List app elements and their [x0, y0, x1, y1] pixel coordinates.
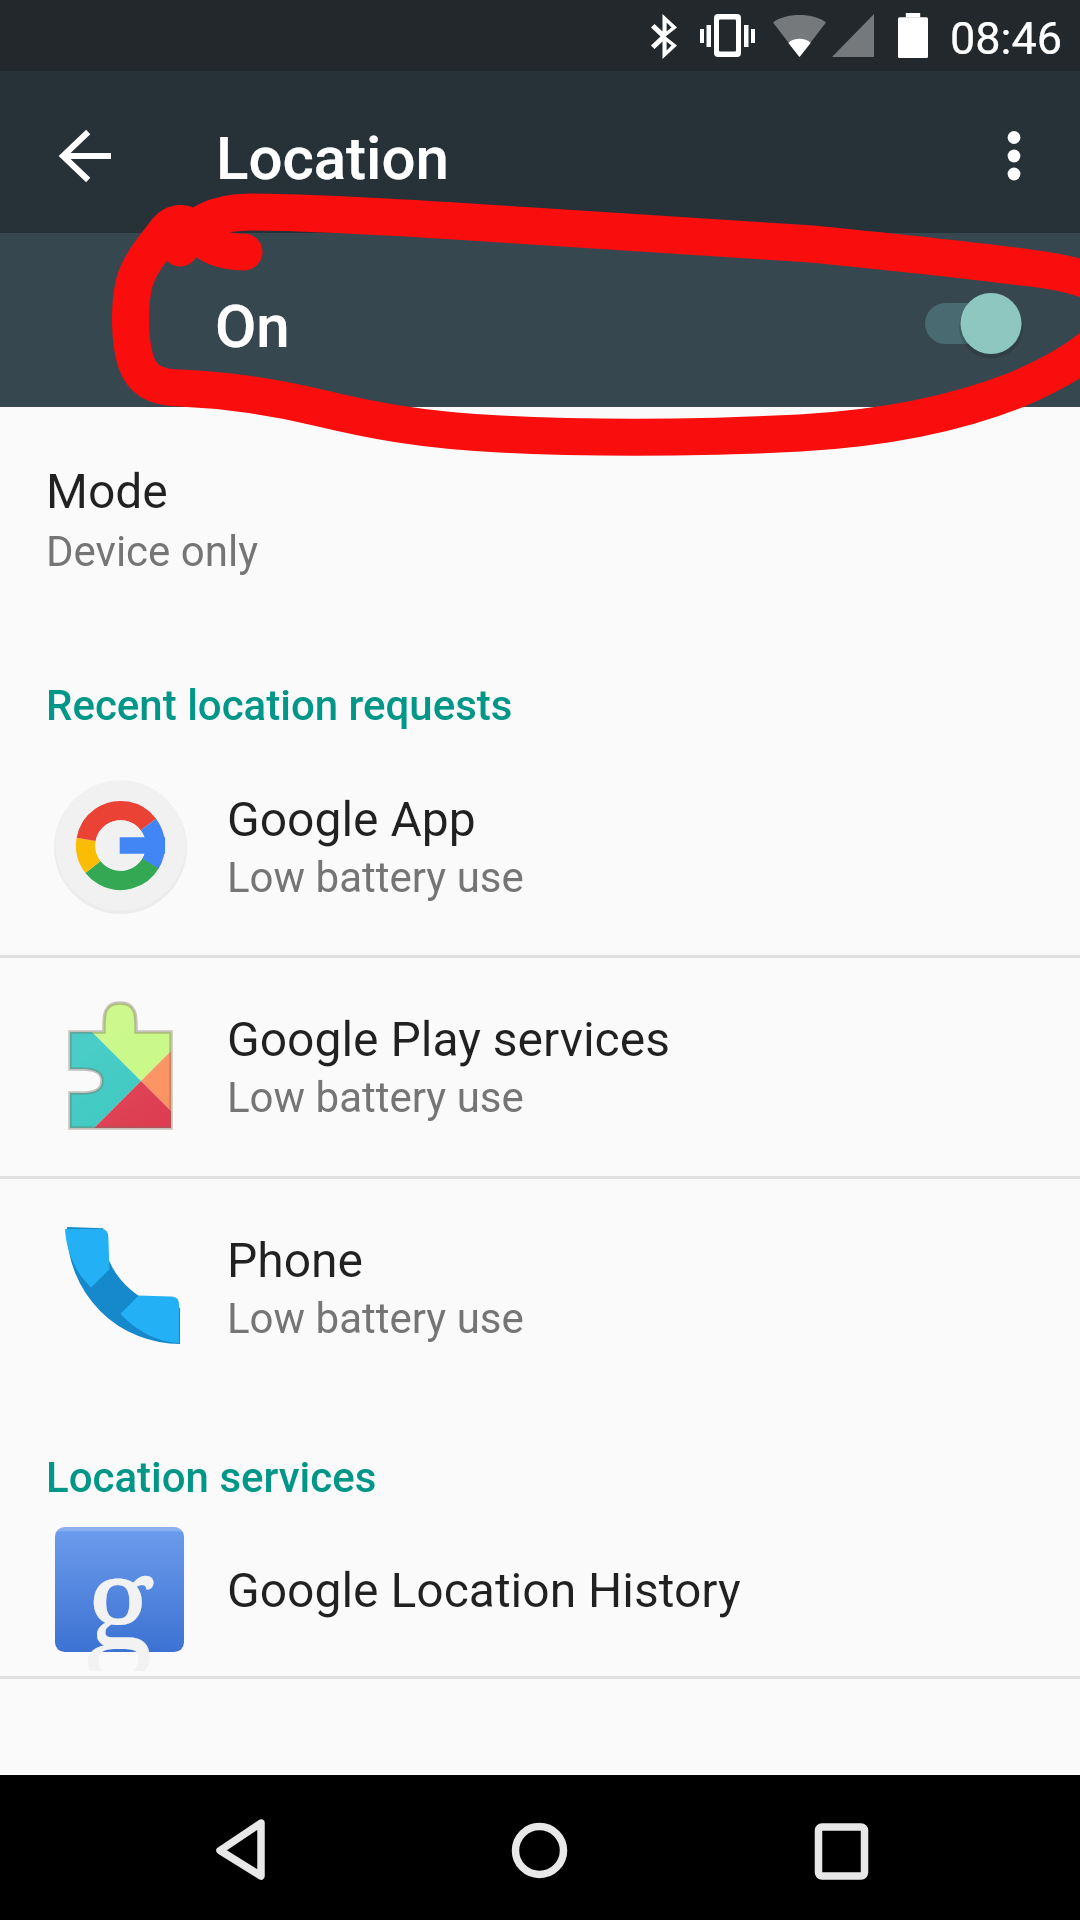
staticText: 08:46	[950, 12, 1063, 65]
button[interactable]: Back	[36, 108, 132, 204]
staticText: Google App	[227, 791, 476, 847]
button[interactable]: Mode	[0, 440, 1080, 600]
staticText: Device only	[46, 527, 259, 576]
staticText: Phone	[227, 1232, 364, 1288]
staticText: Google Location History	[227, 1562, 741, 1618]
button[interactable]: Google Play services	[0, 955, 1080, 1175]
staticText: On	[215, 291, 290, 361]
staticText: Location services	[46, 1453, 377, 1502]
button[interactable]: Home	[480, 1787, 600, 1907]
button[interactable]: On	[0, 233, 1080, 407]
staticText: Low battery use	[227, 853, 524, 902]
button[interactable]: Recent apps	[780, 1787, 900, 1907]
staticText: Google Play services	[227, 1011, 670, 1067]
button[interactable]: g	[0, 1516, 1080, 1676]
button[interactable]: More options	[966, 108, 1062, 204]
button[interactable]: Google App	[0, 735, 1080, 955]
staticText: g	[85, 1511, 155, 1671]
staticText: Low battery use	[227, 1073, 524, 1122]
button[interactable]: Phone	[0, 1176, 1080, 1396]
button[interactable]: Back	[180, 1787, 300, 1907]
staticText: Recent location requests	[46, 681, 513, 730]
staticText: Location	[216, 123, 449, 193]
staticText: Low battery use	[227, 1294, 524, 1343]
staticText: Mode	[46, 463, 168, 519]
